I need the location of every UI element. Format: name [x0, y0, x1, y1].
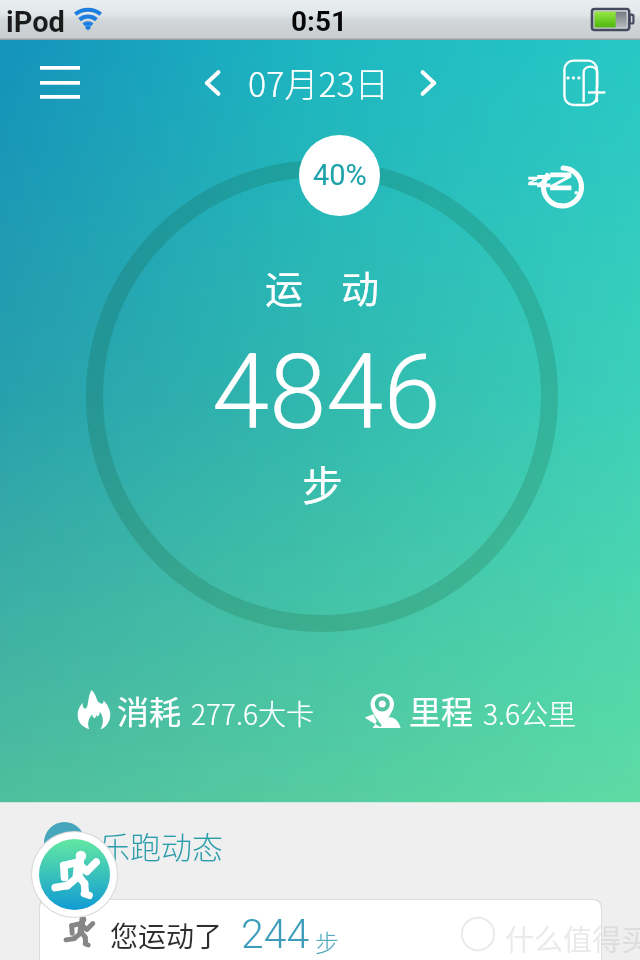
staticText: 消耗 [117, 687, 182, 733]
staticText: 运 [265, 259, 304, 314]
staticText: 07月23日 [248, 58, 389, 107]
button[interactable]: 您运动了 [40, 900, 601, 960]
staticText: 3.6公里 [483, 693, 576, 734]
staticText: 里程 [409, 687, 474, 733]
staticText: 步 [302, 453, 343, 512]
staticText: 步 [315, 924, 339, 959]
staticText: 0:51 [291, 5, 348, 38]
staticText: 40% [313, 158, 367, 192]
button[interactable]: Next day [410, 65, 446, 101]
staticText: 乐跑动态 [99, 823, 223, 868]
staticText: 4846 [212, 332, 441, 453]
button[interactable]: Add device [548, 52, 610, 114]
button[interactable]: Menu [32, 57, 86, 103]
button[interactable]: Start running [31, 831, 118, 918]
button[interactable]: Sleep [515, 150, 591, 226]
staticText: 什么值得买 [505, 917, 640, 959]
button[interactable]: Previous day [195, 65, 231, 101]
staticText: iPod [6, 5, 65, 39]
button[interactable]: 40% [299, 135, 380, 216]
staticText: 277.6大卡 [191, 693, 314, 734]
staticText: 动 [341, 259, 380, 314]
staticText: 您运动了 [110, 915, 223, 956]
staticText: 244 [241, 910, 310, 958]
